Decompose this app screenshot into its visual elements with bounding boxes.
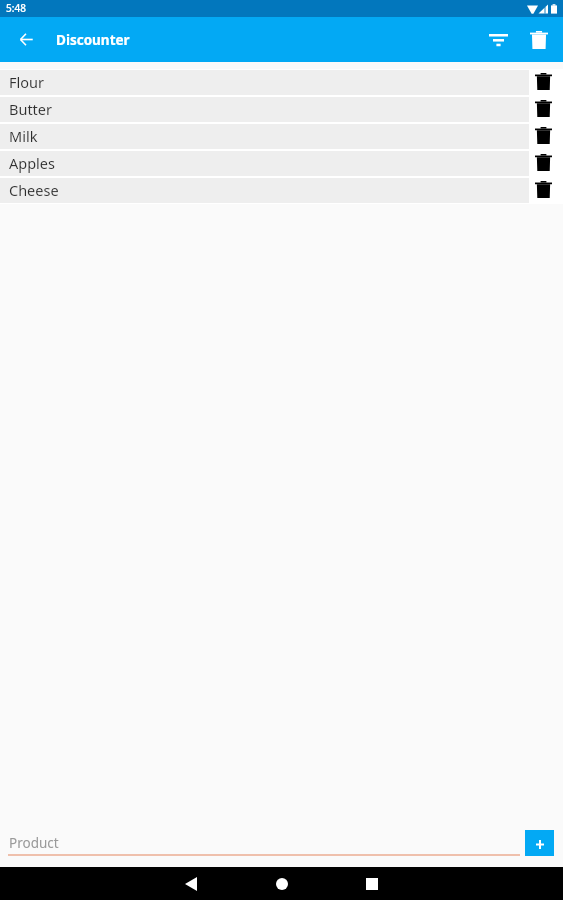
button[interactable]: Butter [0, 96, 563, 123]
staticText: Milk [9, 126, 38, 146]
staticText: Product [9, 834, 59, 852]
staticText: Discounter [56, 31, 130, 49]
button[interactable]: Back [169, 867, 213, 900]
button[interactable]: Recents [350, 867, 394, 900]
button[interactable]: Add product [525, 830, 554, 856]
button[interactable]: Milk [0, 123, 563, 150]
button[interactable]: Back [0, 18, 52, 61]
staticText: 5:48 [6, 1, 26, 15]
button[interactable]: Delete Cheese [529, 177, 563, 204]
button[interactable]: Home [260, 867, 304, 900]
button[interactable]: Filter [474, 18, 518, 61]
staticText: Butter [9, 99, 53, 119]
button[interactable]: Apples [0, 150, 563, 177]
button[interactable]: Delete all [518, 18, 563, 61]
button[interactable]: Delete Butter [529, 96, 563, 123]
button[interactable]: Cheese [0, 177, 563, 204]
staticText: Apples [9, 153, 55, 173]
button[interactable]: Delete Milk [529, 123, 563, 150]
button[interactable]: Flour [0, 69, 563, 96]
staticText: Flour [9, 72, 44, 92]
staticText: Cheese [9, 180, 59, 200]
button[interactable]: Delete Apples [529, 150, 563, 177]
button[interactable]: Delete Flour [529, 69, 563, 96]
